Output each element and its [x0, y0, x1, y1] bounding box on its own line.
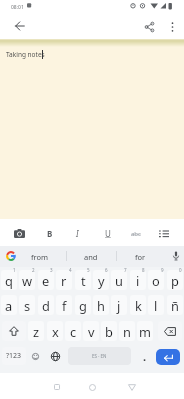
button[interactable]: ES · EN: [68, 347, 131, 365]
staticText: w: [22, 272, 33, 289]
staticText: t: [81, 272, 86, 289]
staticText: 5: [87, 267, 90, 273]
staticText: 08:01: [11, 4, 24, 11]
button[interactable]: [48, 348, 62, 364]
staticText: y: [98, 272, 105, 289]
staticText: 3: [50, 267, 53, 273]
button[interactable]: y: [93, 270, 109, 290]
staticText: g: [79, 297, 87, 314]
button[interactable]: m: [137, 321, 153, 341]
button[interactable]: k: [130, 295, 146, 315]
staticText: Taking notes: [6, 50, 45, 59]
button[interactable]: [47, 377, 67, 397]
button[interactable]: [156, 349, 180, 365]
button[interactable]: Taking notes: [6, 49, 56, 59]
button[interactable]: g: [75, 295, 91, 315]
staticText: U: [105, 228, 111, 239]
staticText: z: [33, 323, 40, 340]
button[interactable]: [4, 249, 17, 262]
button[interactable]: l: [148, 295, 164, 315]
staticText: 7: [124, 267, 127, 273]
staticText: ES · EN: [92, 353, 107, 359]
button[interactable]: b: [101, 321, 117, 341]
button[interactable]: n: [119, 321, 135, 341]
button[interactable]: j: [111, 295, 127, 315]
staticText: a: [5, 297, 13, 314]
staticText: 6: [105, 267, 108, 273]
button[interactable]: abc: [127, 226, 144, 241]
button[interactable]: s: [19, 295, 35, 315]
staticText: ñ: [171, 297, 179, 314]
staticText: f: [62, 297, 67, 314]
staticText: B: [47, 228, 53, 239]
staticText: and: [84, 252, 98, 262]
button[interactable]: r: [56, 270, 72, 290]
staticText: s: [24, 297, 31, 314]
button[interactable]: ?123: [2, 347, 26, 365]
staticText: n: [123, 323, 131, 340]
staticText: I: [76, 228, 79, 239]
button[interactable]: [169, 248, 182, 264]
button[interactable]: [156, 226, 172, 241]
staticText: ?123: [6, 351, 22, 361]
staticText: i: [136, 272, 140, 289]
staticText: from: [31, 252, 49, 262]
button[interactable]: [82, 377, 102, 397]
button[interactable]: and: [76, 246, 106, 267]
staticText: v: [88, 323, 95, 340]
staticText: l: [154, 297, 158, 314]
button[interactable]: p: [167, 270, 183, 290]
button[interactable]: c: [65, 321, 81, 341]
button[interactable]: e: [38, 270, 54, 290]
staticText: b: [105, 323, 113, 340]
staticText: j: [117, 297, 121, 314]
button[interactable]: I: [70, 226, 85, 241]
button[interactable]: [165, 19, 180, 35]
button[interactable]: .: [138, 347, 152, 365]
button[interactable]: u: [111, 270, 127, 290]
button[interactable]: [10, 17, 29, 35]
staticText: abc: [131, 230, 141, 238]
button[interactable]: i: [130, 270, 146, 290]
button[interactable]: x: [47, 321, 63, 341]
staticText: p: [171, 272, 179, 289]
button[interactable]: [158, 321, 182, 341]
staticText: q: [5, 272, 13, 289]
staticText: .: [143, 349, 147, 364]
button[interactable]: B: [42, 226, 57, 241]
button[interactable]: from: [25, 246, 55, 267]
staticText: u: [115, 272, 123, 289]
button[interactable]: d: [38, 295, 54, 315]
button[interactable]: for: [125, 246, 155, 267]
staticText: o: [152, 272, 160, 289]
staticText: e: [42, 272, 50, 289]
staticText: 8: [142, 267, 145, 273]
button[interactable]: o: [148, 270, 164, 290]
staticText: 9: [161, 267, 164, 273]
button[interactable]: f: [56, 295, 72, 315]
button[interactable]: [141, 19, 157, 35]
button[interactable]: w: [19, 270, 35, 290]
button[interactable]: v: [83, 321, 99, 341]
staticText: d: [42, 297, 50, 314]
button[interactable]: [28, 348, 42, 364]
button[interactable]: a: [1, 295, 17, 315]
button[interactable]: [11, 226, 27, 241]
staticText: c: [70, 323, 77, 340]
staticText: for: [135, 252, 146, 262]
button[interactable]: t: [75, 270, 91, 290]
staticText: 2: [32, 267, 35, 273]
staticText: r: [61, 272, 67, 289]
button[interactable]: z: [28, 321, 44, 341]
button[interactable]: q: [1, 270, 17, 290]
button[interactable]: ñ: [167, 295, 183, 315]
staticText: k: [135, 297, 142, 314]
button[interactable]: U: [100, 226, 115, 241]
staticText: x: [52, 323, 59, 340]
button[interactable]: h: [93, 295, 109, 315]
button[interactable]: [122, 377, 142, 397]
button[interactable]: [2, 321, 26, 341]
staticText: 4: [69, 267, 72, 273]
staticText: h: [97, 297, 105, 314]
staticText: 0: [179, 267, 182, 273]
